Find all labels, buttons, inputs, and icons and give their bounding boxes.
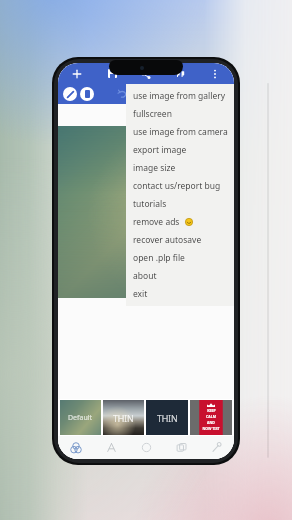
button[interactable]: fullscreen (126, 105, 234, 123)
staticText: NOW TIST (202, 426, 220, 431)
button[interactable]: Thin dark template (146, 400, 188, 435)
staticText: export image (133, 144, 187, 156)
staticText: CALM (206, 414, 216, 419)
button[interactable]: Tools (199, 436, 234, 459)
staticText: image size (133, 162, 176, 174)
staticText: THIN (113, 412, 134, 424)
button[interactable]: Default template (60, 400, 101, 435)
staticText: contact us/report bug (133, 180, 221, 192)
button[interactable]: about (126, 267, 234, 285)
button[interactable]: Quote (170, 63, 192, 84)
button[interactable]: use image from gallery (126, 87, 234, 105)
staticText: THIN (157, 412, 178, 424)
button[interactable]: recover autosave (126, 231, 234, 249)
button[interactable]: Delete (80, 87, 94, 101)
button[interactable]: Save (101, 63, 123, 84)
staticText: recover autosave (133, 234, 202, 246)
staticText: about (133, 270, 157, 282)
button[interactable]: tutorials (126, 195, 234, 213)
staticText: use image from gallery (133, 90, 226, 102)
button[interactable]: More options (204, 63, 226, 84)
staticText: fullscreen (133, 108, 172, 120)
staticText: Default (68, 413, 93, 423)
staticText: Ne (149, 203, 167, 221)
button[interactable]: export image (126, 141, 234, 159)
button[interactable]: Thin photo template (103, 400, 144, 435)
button[interactable]: Add (66, 63, 88, 84)
staticText: KEEP (207, 408, 216, 413)
button[interactable]: image size (126, 159, 234, 177)
button[interactable]: Text (94, 436, 129, 459)
staticText: open .plp file (133, 252, 185, 264)
button[interactable]: Undo (116, 87, 130, 101)
staticText: remove ads (133, 216, 180, 228)
button[interactable]: remove ads (126, 213, 234, 231)
button[interactable]: Layers (164, 436, 199, 459)
staticText: AND (207, 420, 215, 425)
button[interactable]: contact us/report bug (126, 177, 234, 195)
button[interactable]: open .plp file (126, 249, 234, 267)
staticText: tutorials (133, 198, 167, 210)
button[interactable]: Share (135, 63, 157, 84)
button[interactable]: Edit (63, 87, 77, 101)
staticText: use image from camera (133, 126, 228, 138)
button[interactable]: use image from camera (126, 123, 234, 141)
button[interactable]: exit (126, 285, 234, 303)
button[interactable]: Filters (58, 436, 94, 459)
button[interactable]: Keep calm template (190, 400, 232, 435)
staticText: exit (133, 288, 148, 300)
button[interactable]: Shapes (129, 436, 164, 459)
